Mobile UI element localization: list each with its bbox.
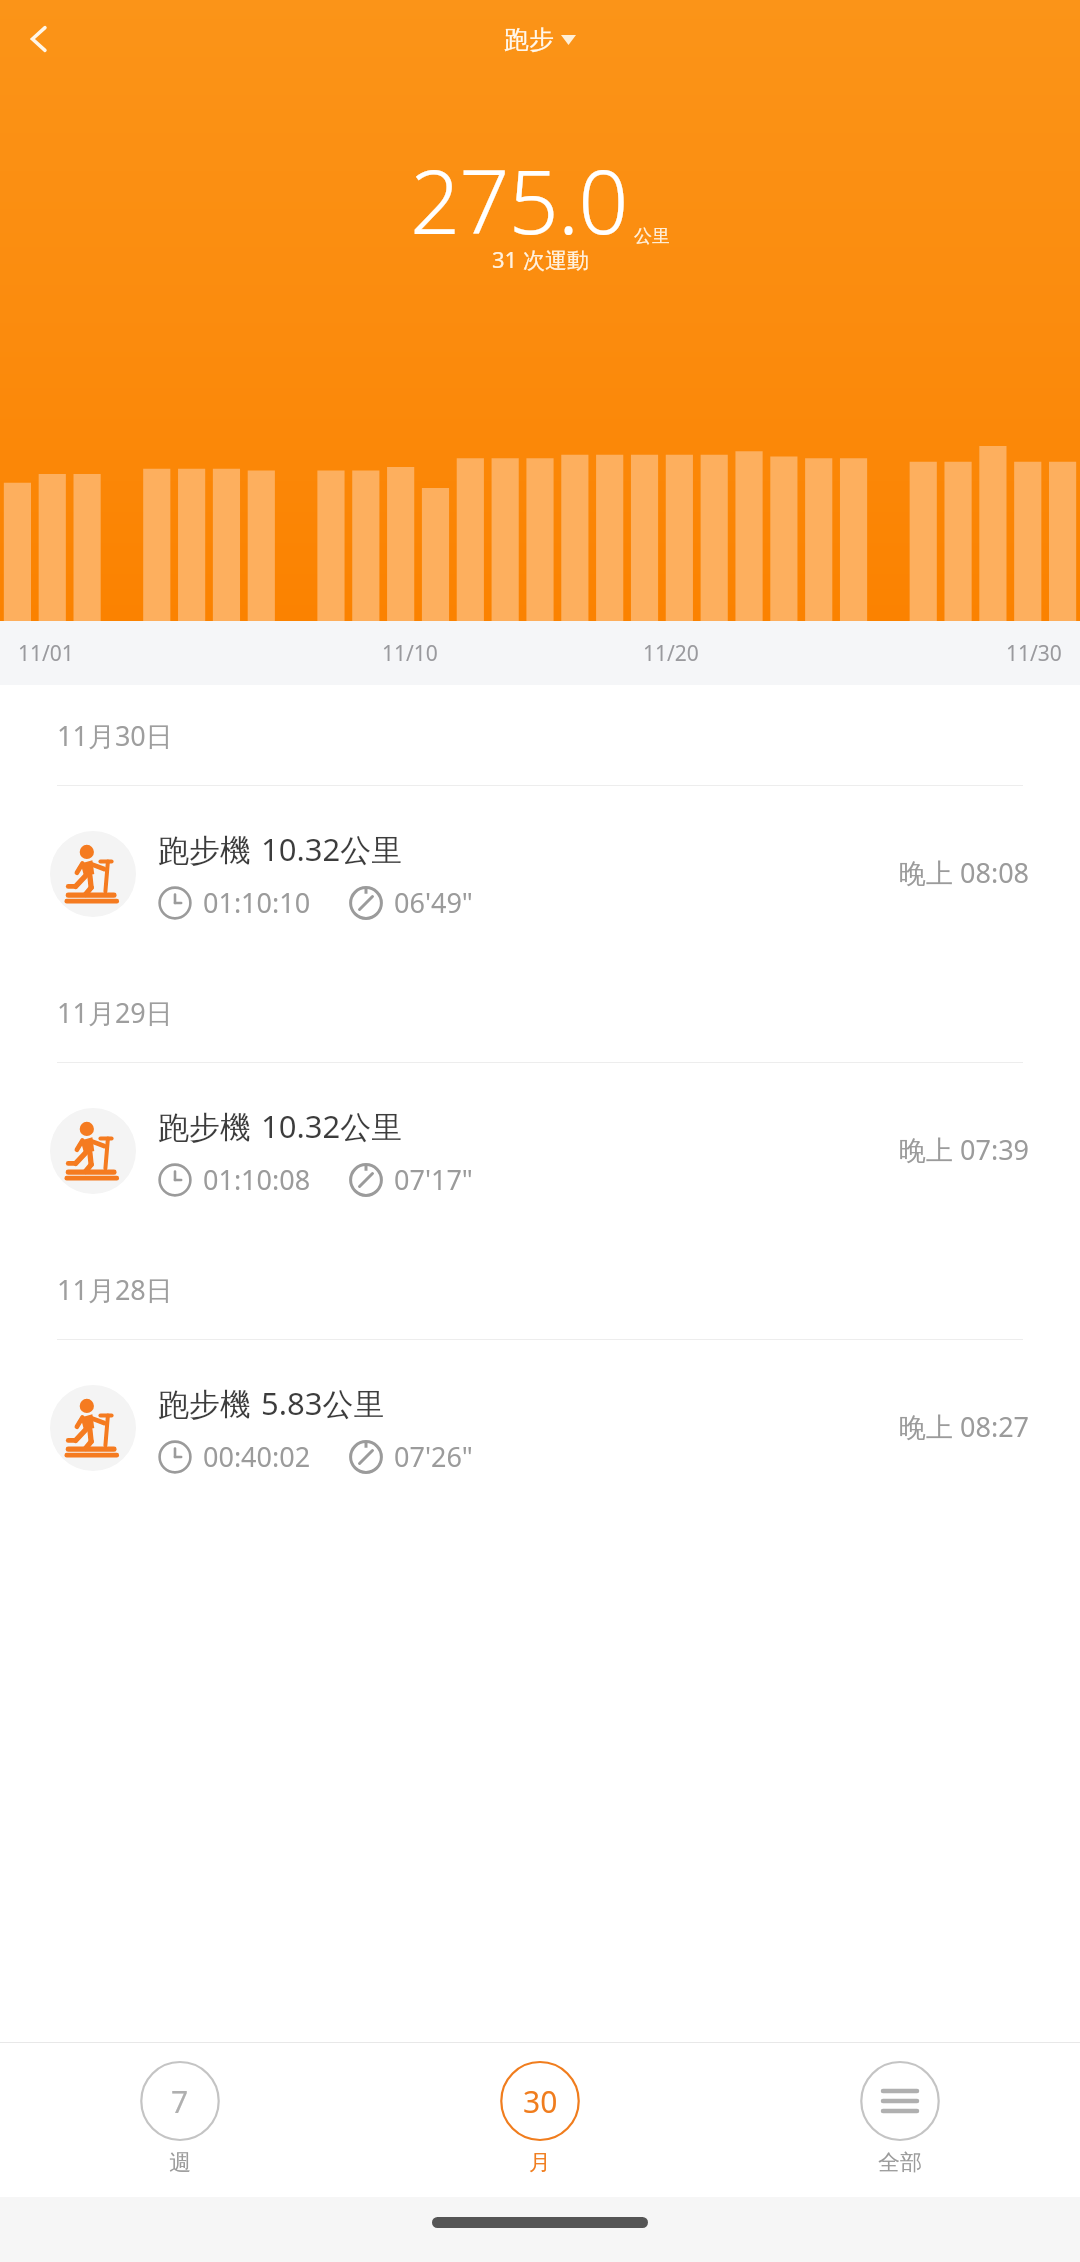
- staticText: 11/30: [1006, 639, 1062, 668]
- staticText: 01:10:10: [203, 884, 311, 921]
- staticText: 07'17": [394, 1161, 473, 1198]
- staticText: 10.32公里: [261, 1105, 403, 1147]
- staticText: 31 次運動: [492, 244, 589, 274]
- staticText: 晚上 07:39: [899, 1131, 1030, 1168]
- staticText: 5.83公里: [261, 1382, 385, 1424]
- staticText: 11/10: [382, 639, 438, 668]
- staticText: 11/20: [643, 639, 699, 668]
- button[interactable]: 跑步機: [0, 1063, 1080, 1239]
- staticText: 全部: [878, 2149, 922, 2177]
- staticText: 11月29日: [57, 994, 173, 1031]
- staticText: 10.32公里: [261, 828, 403, 870]
- staticText: 11月28日: [57, 1271, 173, 1308]
- staticText: 公里: [634, 225, 670, 248]
- button[interactable]: 跑步機: [0, 786, 1080, 962]
- staticText: 晚上 08:27: [899, 1408, 1030, 1445]
- button[interactable]: Back: [10, 10, 68, 68]
- button[interactable]: 7: [0, 2042, 360, 2197]
- staticText: 30: [523, 2081, 558, 2122]
- staticText: 月: [529, 2149, 551, 2177]
- staticText: 11月30日: [57, 717, 173, 754]
- staticText: 7: [171, 2081, 189, 2122]
- staticText: 00:40:02: [203, 1438, 311, 1475]
- staticText: 跑步機: [158, 1385, 251, 1424]
- staticText: 跑步機: [158, 831, 251, 870]
- staticText: 晚上 08:08: [899, 854, 1030, 891]
- staticText: 06'49": [394, 884, 473, 921]
- button[interactable]: 跑步機: [0, 1340, 1080, 1516]
- staticText: 01:10:08: [203, 1161, 311, 1198]
- button[interactable]: 跑步: [504, 24, 576, 55]
- button[interactable]: 30: [360, 2042, 720, 2197]
- staticText: 275.0: [410, 140, 628, 260]
- staticText: 跑步: [504, 24, 554, 55]
- staticText: 週: [169, 2149, 191, 2177]
- button[interactable]: 全部: [720, 2042, 1080, 2197]
- staticText: 跑步機: [158, 1108, 251, 1147]
- staticText: 11/01: [18, 639, 74, 668]
- staticText: 07'26": [394, 1438, 473, 1475]
